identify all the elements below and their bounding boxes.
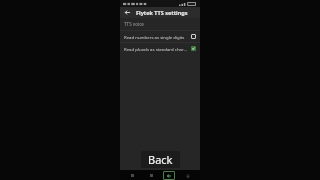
- staticText: TTS voice: [124, 21, 144, 27]
- staticText: Back: [148, 152, 173, 167]
- button[interactable]: Recents: [126, 171, 138, 180]
- button[interactable]: Back: [123, 8, 132, 17]
- staticText: Flytek TTS settings: [136, 9, 188, 16]
- button[interactable]: Home: [145, 171, 157, 180]
- button[interactable]: Back: [163, 171, 175, 180]
- button[interactable]: Keyboard: [182, 171, 194, 180]
- staticText: Read plurals as standard characters: [124, 46, 188, 52]
- button[interactable]: Back: [141, 151, 180, 168]
- button[interactable]: Read numbers as single digits: [120, 31, 200, 42]
- button[interactable]: Read plurals as standard characters: [120, 43, 200, 54]
- staticText: Read numbers as single digits: [124, 34, 188, 40]
